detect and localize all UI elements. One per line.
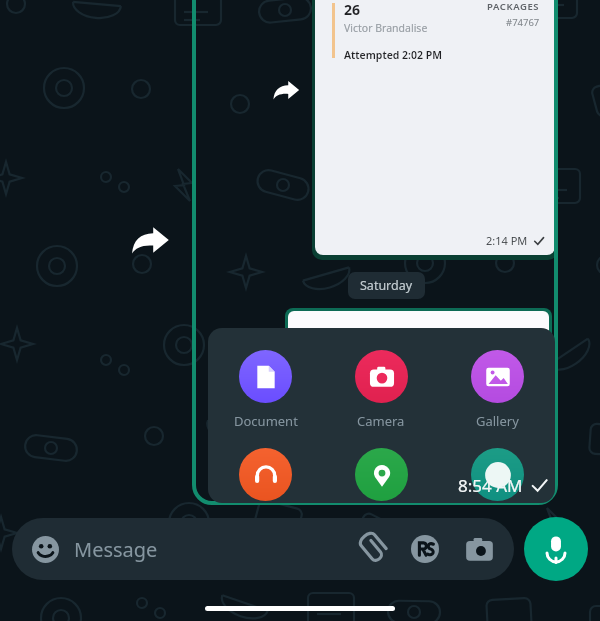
button[interactable]: Voice message [524, 517, 588, 581]
staticText: Attempted 2:02 PM [344, 48, 442, 62]
staticText: Document [234, 412, 298, 430]
button[interactable]: Gallery [439, 350, 555, 430]
staticText: Camera [357, 412, 405, 430]
staticText: Victor Brandalise [344, 21, 428, 35]
staticText: Gallery [476, 412, 519, 430]
staticText: Saturday [360, 277, 413, 294]
button[interactable]: Emoji [30, 534, 60, 564]
button[interactable]: Payment [408, 532, 442, 566]
button[interactable]: Camera [323, 350, 439, 430]
staticText: #74767 [506, 16, 540, 29]
staticText: 26 [344, 0, 361, 19]
staticText: 8:54 AM [458, 474, 523, 497]
button[interactable]: Camera [462, 532, 496, 566]
button[interactable] [312, 0, 558, 260]
button[interactable]: Attachment [208, 448, 323, 501]
staticText: PACKAGES [487, 0, 540, 13]
staticText: 2:14 PM [486, 233, 528, 248]
button[interactable]: Emoji [12, 518, 514, 580]
button[interactable]: Document [208, 350, 323, 430]
button[interactable]: Saturday [348, 272, 425, 299]
button[interactable]: Attach [354, 532, 388, 566]
staticText: Message [74, 536, 158, 563]
button[interactable]: Attachment [439, 448, 555, 501]
button[interactable]: Attachment [323, 448, 439, 501]
